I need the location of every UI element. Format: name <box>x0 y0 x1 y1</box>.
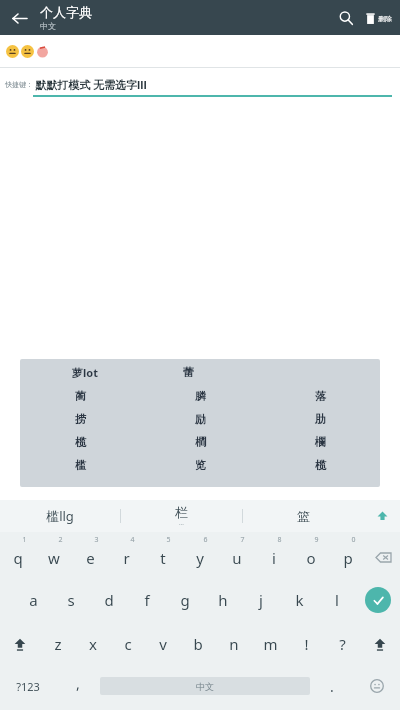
staticText: h <box>218 590 228 610</box>
staticText: f <box>144 590 150 610</box>
staticText: ··· <box>179 520 184 528</box>
staticText: a <box>29 590 38 610</box>
button[interactable]: Backspace <box>366 532 400 578</box>
staticText: j <box>259 590 263 610</box>
button[interactable]: ! <box>288 622 324 666</box>
staticText: 榄 <box>315 458 326 472</box>
staticText: u <box>232 548 242 568</box>
staticText: r <box>123 548 130 568</box>
staticText: 览 <box>195 458 206 472</box>
staticText: 栏 <box>175 504 188 520</box>
button[interactable]: s <box>52 578 90 622</box>
staticText: 7 <box>240 535 245 545</box>
button[interactable]: 萝lot <box>20 359 380 487</box>
button[interactable]: x <box>75 622 110 666</box>
staticText: v <box>159 634 167 654</box>
staticText: 落 <box>315 389 326 403</box>
button[interactable]: . <box>310 666 354 706</box>
staticText: l <box>335 590 339 610</box>
button[interactable]: 6 <box>181 532 218 578</box>
staticText: i <box>272 548 276 568</box>
staticText: 删除 <box>378 14 392 23</box>
staticText: 个人字典 <box>40 4 92 20</box>
button[interactable]: Enter <box>356 578 400 622</box>
staticText: 蔺 <box>75 389 86 403</box>
staticText: b <box>193 634 203 654</box>
button[interactable]: Delete <box>362 12 394 25</box>
button[interactable]: h <box>204 578 242 622</box>
staticText: 0 <box>351 535 356 545</box>
button[interactable]: 3 <box>72 532 108 578</box>
staticText: 默默打模式 无需选字lll <box>35 77 147 92</box>
button[interactable]: 5 <box>144 532 181 578</box>
staticText: 蕾 <box>183 365 194 379</box>
button[interactable]: v <box>145 622 180 666</box>
button[interactable]: g <box>166 578 204 622</box>
button[interactable]: Search <box>332 4 360 32</box>
staticText: o <box>306 548 316 568</box>
button[interactable]: ?123 <box>0 666 56 706</box>
button[interactable]: m <box>252 622 288 666</box>
staticText: s <box>67 590 75 610</box>
button[interactable]: 8 <box>255 532 292 578</box>
staticText: x <box>89 634 97 654</box>
staticText: ? <box>339 634 346 654</box>
button[interactable]: 篮 <box>243 500 364 532</box>
staticText: e <box>86 548 95 568</box>
button[interactable]: b <box>180 622 216 666</box>
staticText: 3 <box>94 535 99 545</box>
staticText: 9 <box>314 535 319 545</box>
staticText: 8 <box>277 535 282 545</box>
staticText: 5 <box>166 535 171 545</box>
button[interactable]: 2 <box>36 532 72 578</box>
staticText: p <box>343 548 353 568</box>
staticText: 中文 <box>40 21 56 31</box>
button[interactable]: 4 <box>108 532 144 578</box>
button[interactable]: d <box>90 578 128 622</box>
button[interactable]: Expand candidates <box>364 500 400 532</box>
button[interactable]: Emoji <box>354 666 400 706</box>
button[interactable]: 槛llg <box>0 500 120 532</box>
staticText: w <box>48 548 60 568</box>
button[interactable]: 栏 <box>121 500 242 532</box>
button[interactable]: 1 <box>0 532 36 578</box>
staticText: 中文 <box>196 681 214 692</box>
staticText: q <box>13 548 23 568</box>
button[interactable]: 0 <box>329 532 366 578</box>
staticText: 肋 <box>315 412 326 426</box>
staticText: g <box>180 590 190 610</box>
button[interactable]: , <box>56 666 100 706</box>
staticText: ! <box>304 634 309 654</box>
button[interactable]: n <box>216 622 252 666</box>
button[interactable]: 9 <box>292 532 329 578</box>
staticText: 欄 <box>315 435 326 449</box>
button[interactable]: 中文 <box>100 677 310 695</box>
button[interactable]: Back <box>4 1 34 35</box>
staticText: 槛 <box>75 458 86 472</box>
staticText: z <box>54 634 62 654</box>
button[interactable]: j <box>242 578 280 622</box>
button[interactable]: l <box>318 578 356 622</box>
button[interactable]: k <box>280 578 318 622</box>
staticText: 4 <box>130 535 135 545</box>
staticText: . <box>330 677 334 696</box>
button[interactable]: ? <box>324 622 360 666</box>
button[interactable]: Shift right <box>360 622 400 666</box>
staticText: , <box>76 674 80 693</box>
button[interactable]: c <box>110 622 145 666</box>
button[interactable]: f <box>128 578 166 622</box>
staticText: 膦 <box>195 389 206 403</box>
staticText: 6 <box>203 535 208 545</box>
staticText: c <box>124 634 132 654</box>
staticText: 捞 <box>75 412 86 426</box>
staticText: m <box>263 634 278 654</box>
button[interactable]: a <box>14 578 52 622</box>
button[interactable]: z <box>40 622 75 666</box>
button[interactable]: Shift <box>0 622 40 666</box>
staticText: 1 <box>22 535 27 545</box>
button[interactable]: 7 <box>218 532 255 578</box>
staticText: 榄 <box>75 435 86 449</box>
staticText: 萝lot <box>72 365 98 380</box>
staticText: 2 <box>58 535 63 545</box>
